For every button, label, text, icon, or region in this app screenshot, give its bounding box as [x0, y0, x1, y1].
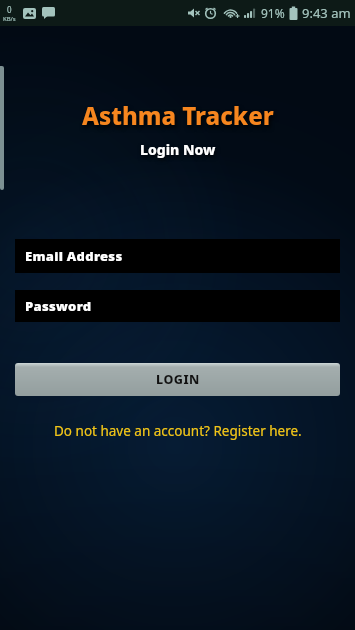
button[interactable]: Password	[15, 290, 340, 322]
staticText: LOGIN	[156, 371, 200, 388]
button[interactable]: LOGIN	[15, 363, 340, 396]
staticText: Password	[25, 297, 92, 315]
button[interactable]: Do not have an account? Register here.	[0, 422, 355, 440]
staticText: Asthma Tracker	[82, 99, 274, 132]
staticText: Do not have an account? Register here.	[54, 422, 302, 440]
staticText: 91%	[261, 5, 285, 21]
staticText: Email Address	[25, 247, 123, 265]
staticText: 0	[7, 4, 12, 15]
button[interactable]: Email Address	[15, 239, 340, 273]
staticText: 9:43 am	[302, 4, 351, 22]
staticText: KB/s	[3, 15, 16, 23]
staticText: Login Now	[140, 140, 216, 159]
